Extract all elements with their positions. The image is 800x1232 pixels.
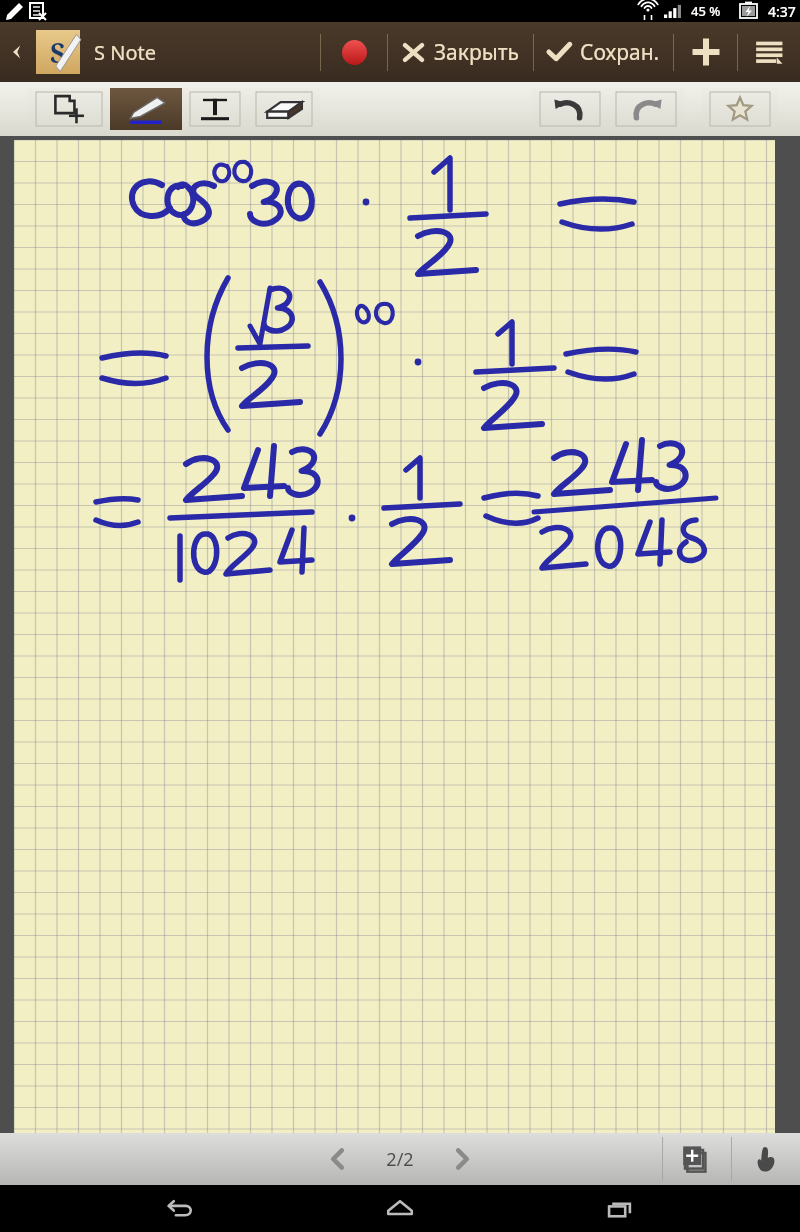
button[interactable]: Next page bbox=[435, 1133, 489, 1185]
staticText: 2/2 bbox=[365, 1147, 435, 1172]
staticText: S bbox=[50, 34, 66, 71]
button[interactable]: Back bbox=[0, 22, 34, 82]
button[interactable]: Record bbox=[321, 22, 387, 82]
button[interactable]: More options bbox=[738, 22, 800, 82]
button[interactable]: Previous page bbox=[311, 1133, 365, 1185]
button[interactable]: Tool bbox=[702, 88, 778, 130]
button[interactable]: Tool bbox=[608, 88, 684, 130]
button[interactable]: Tool bbox=[532, 88, 608, 130]
button[interactable]: Hand tool bbox=[732, 1133, 800, 1185]
staticText: Сохран. bbox=[580, 38, 660, 67]
button[interactable]: Сохран. bbox=[547, 22, 660, 82]
button[interactable]: Recent apps bbox=[580, 1185, 660, 1232]
button[interactable]: Tool bbox=[28, 88, 110, 130]
button[interactable]: Закрыть bbox=[402, 22, 519, 82]
button[interactable]: Add page bbox=[663, 1133, 731, 1185]
button[interactable]: Home bbox=[360, 1185, 440, 1232]
staticText: Закрыть bbox=[434, 38, 519, 67]
staticText: 45 % bbox=[691, 2, 721, 20]
button[interactable]: Tool bbox=[110, 88, 182, 130]
button[interactable]: S Note bbox=[36, 30, 80, 74]
button[interactable]: Tool bbox=[182, 88, 248, 130]
button[interactable]: Back bbox=[140, 1185, 220, 1232]
button[interactable]: Add bbox=[674, 22, 737, 82]
staticText: 4:37 bbox=[768, 2, 796, 21]
button[interactable]: Tool bbox=[248, 88, 320, 130]
staticText: S Note bbox=[94, 39, 156, 66]
